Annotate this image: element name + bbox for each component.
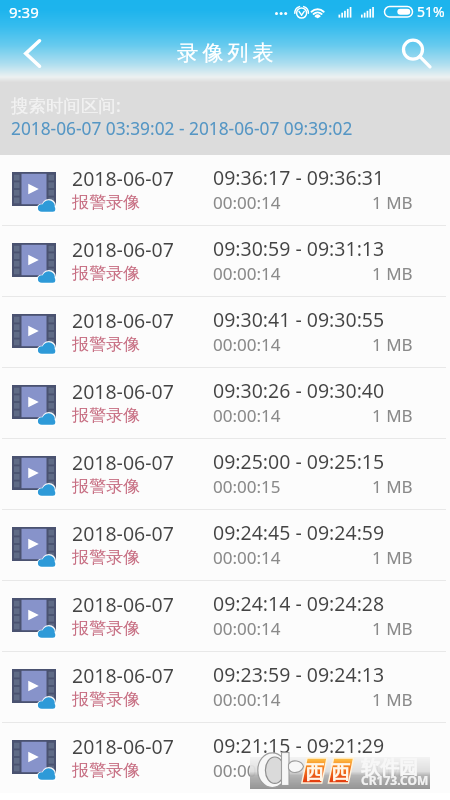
staticText: 报警录像 (72, 760, 140, 781)
staticText: 软件园 (361, 756, 418, 780)
staticText: 搜索时间区间: (11, 93, 121, 117)
staticText: 报警录像 (72, 618, 140, 639)
staticText: 09:23:59 - 09:24:13 (213, 661, 385, 688)
staticText: 2018-06-07 (72, 378, 174, 405)
staticText: 2018-06-07 (72, 733, 174, 760)
button[interactable]: Search (392, 28, 442, 78)
staticText: 09:30:41 - 09:30:55 (213, 306, 385, 333)
staticText: 00:00:14 (213, 759, 281, 782)
staticText: 报警录像 (72, 547, 140, 568)
staticText: 09:24:14 - 09:24:28 (213, 590, 385, 617)
staticText: 西 (331, 761, 350, 785)
staticText: 1 MB (372, 333, 413, 356)
staticText: 09:36:17 - 09:36:31 (213, 164, 385, 191)
staticText: 2018-06-07 03:39:02 - 2018-06-07 09:39:0… (11, 117, 353, 141)
button[interactable]: 2018-06-07 (0, 581, 450, 651)
staticText: 09:30:26 - 09:30:40 (213, 377, 385, 404)
staticText: 1 MB (372, 688, 413, 711)
button[interactable]: 2018-06-07 (0, 652, 450, 722)
staticText: 西 (305, 761, 324, 785)
staticText: 2018-06-07 (72, 662, 174, 689)
staticText: 00:00:14 (213, 191, 281, 214)
staticText: 51% (417, 2, 445, 21)
button[interactable]: 2018-06-07 (0, 297, 450, 367)
staticText: 录像列表 (177, 40, 278, 66)
staticText: 00:00:14 (213, 262, 281, 285)
staticText: 1 MB (372, 617, 413, 640)
staticText: 1 MB (372, 404, 413, 427)
staticText: 9:39 (9, 2, 39, 22)
button[interactable]: Back (4, 28, 60, 78)
staticText: 2018-06-07 (72, 165, 174, 192)
staticText: 00:00:14 (213, 546, 281, 569)
staticText: 00:00:14 (213, 617, 281, 640)
staticText: 报警录像 (72, 263, 140, 284)
button[interactable]: 2018-06-07 (0, 510, 450, 580)
staticText: 09:24:45 - 09:24:59 (213, 519, 385, 546)
staticText: CR173.COM (361, 772, 429, 788)
staticText: 2018-06-07 (72, 591, 174, 618)
staticText: 00:00:15 (213, 475, 281, 498)
staticText: 报警录像 (72, 476, 140, 497)
staticText: 2018-06-07 (72, 307, 174, 334)
staticText: 1 MB (372, 262, 413, 285)
button[interactable]: 2018-06-07 (0, 368, 450, 438)
staticText: 2018-06-07 (72, 520, 174, 547)
staticText: 报警录像 (72, 689, 140, 710)
button[interactable]: 2018-06-07 (0, 439, 450, 509)
button[interactable]: 2018-06-07 (0, 155, 450, 225)
staticText: 报警录像 (72, 192, 140, 213)
staticText: 1 MB (372, 759, 413, 782)
button[interactable]: 2018-06-07 (0, 226, 450, 296)
staticText: 00:00:14 (213, 404, 281, 427)
staticText: 报警录像 (72, 334, 140, 355)
staticText: 09:30:59 - 09:31:13 (213, 235, 385, 262)
button[interactable]: 2018-06-07 (0, 723, 450, 793)
staticText: 1 MB (372, 475, 413, 498)
staticText: 1 MB (372, 546, 413, 569)
staticText: 09:25:00 - 09:25:15 (213, 448, 385, 475)
staticText: 00:00:14 (213, 688, 281, 711)
staticText: 1 MB (372, 191, 413, 214)
staticText: 00:00:14 (213, 333, 281, 356)
staticText: 报警录像 (72, 405, 140, 426)
staticText: 2018-06-07 (72, 236, 174, 263)
staticText: 2018-06-07 (72, 449, 174, 476)
staticText: 09:21:15 - 09:21:29 (213, 732, 385, 759)
